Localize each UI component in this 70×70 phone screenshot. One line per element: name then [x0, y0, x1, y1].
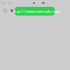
staticText: Mail Edit: [1, 1, 13, 5]
staticText: https://www.example.com: [10, 8, 60, 14]
button[interactable]: https://www.example.com: [15, 7, 55, 15]
button[interactable]: Share: [9, 8, 15, 14]
button[interactable]: Reload: [2, 7, 9, 14]
